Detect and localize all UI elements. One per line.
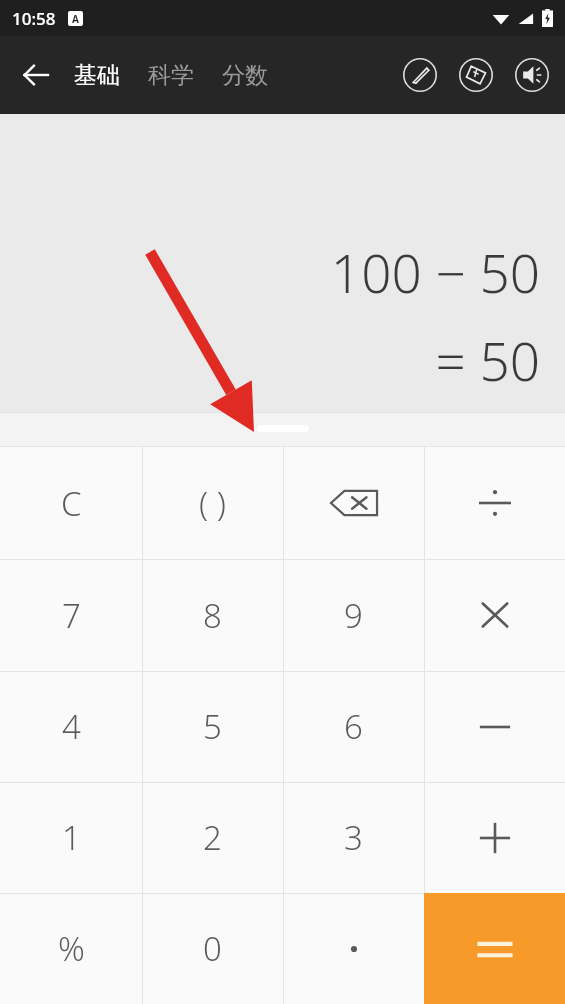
staticText: 4: [62, 704, 81, 749]
button[interactable]: [424, 893, 565, 1004]
button[interactable]: 3: [283, 782, 424, 893]
button[interactable]: 5: [142, 671, 283, 782]
staticText: 7: [62, 593, 81, 638]
button[interactable]: [283, 893, 424, 1004]
staticText: 基础: [74, 61, 120, 90]
button[interactable]: 8: [142, 559, 283, 671]
staticText: C: [61, 481, 82, 526]
staticText: 9: [344, 593, 363, 638]
button[interactable]: 4: [0, 671, 142, 782]
button[interactable]: C: [0, 447, 142, 559]
button[interactable]: 7: [0, 559, 142, 671]
staticText: 分数: [222, 61, 268, 90]
button[interactable]: 9: [283, 559, 424, 671]
button[interactable]: [424, 782, 565, 893]
button[interactable]: Rotate screen: [455, 54, 497, 96]
staticText: 0: [203, 926, 222, 971]
staticText: 3: [344, 815, 363, 860]
button[interactable]: Backspace: [283, 447, 424, 559]
staticText: 100 − 50: [330, 236, 540, 308]
button[interactable]: Sound: [511, 54, 553, 96]
button[interactable]: ( ): [142, 447, 283, 559]
button[interactable]: %: [0, 893, 142, 1004]
button[interactable]: 2: [142, 782, 283, 893]
button[interactable]: 分数: [216, 53, 274, 98]
staticText: ( ): [199, 481, 226, 526]
staticText: 6: [344, 704, 363, 749]
button[interactable]: 科学: [142, 53, 200, 98]
button[interactable]: 1: [0, 782, 142, 893]
button[interactable]: [424, 559, 565, 671]
button[interactable]: [424, 671, 565, 782]
staticText: 8: [203, 593, 222, 638]
button[interactable]: Edit: [399, 54, 441, 96]
staticText: 2: [203, 815, 222, 860]
staticText: = 50: [435, 324, 540, 396]
button[interactable]: [424, 447, 565, 559]
button[interactable]: 0: [142, 893, 283, 1004]
staticText: 1: [62, 815, 81, 860]
button[interactable]: Back: [8, 47, 64, 103]
button[interactable]: 6: [283, 671, 424, 782]
button[interactable]: 基础: [68, 53, 126, 98]
staticText: %: [58, 926, 85, 971]
staticText: 10:58: [12, 7, 56, 30]
staticText: A: [72, 12, 79, 26]
staticText: 科学: [148, 61, 194, 90]
staticText: 5: [203, 704, 222, 749]
